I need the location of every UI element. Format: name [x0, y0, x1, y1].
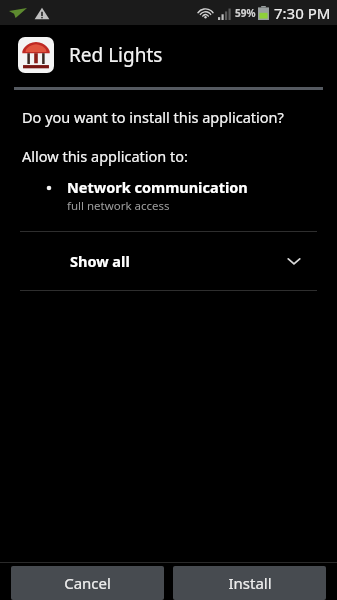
button[interactable]: Show all: [0, 232, 337, 290]
staticText: Allow this application to:: [22, 146, 188, 166]
staticText: Red Lights: [69, 42, 163, 68]
other: Expand: [285, 252, 303, 270]
staticText: Install: [228, 573, 272, 593]
button[interactable]: Install: [173, 566, 326, 600]
button[interactable]: Cancel: [11, 566, 164, 600]
staticText: Cancel: [64, 573, 111, 593]
staticText: Network communication: [67, 177, 248, 197]
staticText: full network access: [67, 198, 170, 214]
staticText: Show all: [70, 251, 130, 271]
button[interactable]: Network communication: [0, 175, 337, 216]
staticText: 59%: [235, 6, 256, 20]
staticText: 7:30 PM: [274, 3, 331, 23]
staticText: Do you want to install this application?: [22, 107, 284, 127]
